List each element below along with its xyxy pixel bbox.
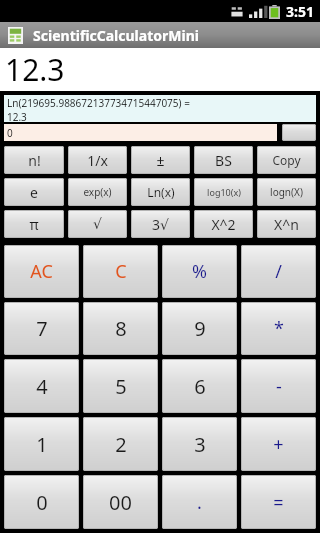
button[interactable]: π	[4, 210, 64, 238]
staticText: 4	[36, 373, 48, 400]
button[interactable]: 4	[4, 359, 79, 413]
button[interactable]: Enter	[282, 124, 316, 141]
button[interactable]: 0	[4, 475, 79, 529]
staticText: ScientificCalculatorMini	[33, 26, 199, 45]
staticText: 8	[115, 315, 127, 342]
staticText: 1	[36, 431, 48, 458]
staticText: C	[115, 259, 127, 284]
button[interactable]: %	[162, 245, 237, 298]
button[interactable]: 2	[83, 417, 158, 471]
staticText: 3√	[152, 215, 169, 234]
button[interactable]: log10(x)	[194, 178, 253, 206]
staticText: 7	[36, 315, 48, 342]
staticText: %	[192, 259, 207, 284]
button[interactable]: Ln(219695.988672137734715447075) =	[4, 95, 316, 122]
button[interactable]: *	[241, 302, 316, 355]
staticText: X^2	[211, 215, 236, 234]
button[interactable]: =	[241, 475, 316, 529]
button[interactable]: C	[83, 245, 158, 298]
staticText: logn(X)	[270, 185, 303, 199]
staticText: 0	[36, 489, 48, 516]
staticText: 3:51	[286, 2, 314, 21]
button[interactable]: 6	[162, 359, 237, 413]
staticText: 2	[115, 431, 127, 458]
staticText: 00	[109, 489, 132, 516]
staticText: 9	[194, 315, 206, 342]
button[interactable]: AC	[4, 245, 79, 298]
staticText: X^n	[274, 215, 299, 234]
staticText: exp(x)	[83, 185, 112, 199]
button[interactable]: Copy	[257, 146, 316, 174]
staticText: +	[273, 432, 284, 457]
button[interactable]: 7	[4, 302, 79, 355]
button[interactable]: 0	[4, 124, 277, 141]
staticText: BS	[215, 151, 232, 170]
button[interactable]: exp(x)	[68, 178, 127, 206]
button[interactable]: e	[4, 178, 64, 206]
button[interactable]: BS	[194, 146, 253, 174]
button[interactable]: logn(X)	[257, 178, 316, 206]
staticText: *	[274, 316, 284, 341]
button[interactable]: √	[68, 210, 127, 238]
button[interactable]: Ln(x)	[131, 178, 190, 206]
staticText: 0	[7, 126, 13, 140]
staticText: 5	[115, 373, 127, 400]
button[interactable]: 12.3	[0, 48, 320, 91]
staticText: log10(x)	[207, 186, 241, 198]
button[interactable]: 1	[4, 417, 79, 471]
button[interactable]: X^2	[194, 210, 253, 238]
button[interactable]: -	[241, 359, 316, 413]
staticText: e	[30, 183, 38, 202]
staticText: /	[275, 259, 282, 284]
button[interactable]: 9	[162, 302, 237, 355]
staticText: n!	[28, 151, 41, 170]
staticText: AC	[30, 259, 53, 284]
staticText: Copy	[272, 152, 301, 168]
staticText: ±	[156, 151, 165, 170]
staticText: =	[273, 490, 284, 515]
button[interactable]: n!	[4, 146, 64, 174]
button[interactable]: X^n	[257, 210, 316, 238]
staticText: -	[276, 374, 282, 399]
staticText: Ln(x)	[147, 184, 175, 200]
button[interactable]: .	[162, 475, 237, 529]
button[interactable]: 00	[83, 475, 158, 529]
staticText: π	[29, 215, 39, 234]
button[interactable]: 3√	[131, 210, 190, 238]
staticText: 6	[194, 373, 206, 400]
staticText: 1/x	[87, 151, 108, 170]
button[interactable]: +	[241, 417, 316, 471]
button[interactable]: 1/x	[68, 146, 127, 174]
staticText: 3	[194, 431, 206, 458]
staticText: .	[197, 490, 202, 515]
staticText: √	[93, 216, 102, 232]
button[interactable]: 8	[83, 302, 158, 355]
button[interactable]: ±	[131, 146, 190, 174]
button[interactable]: /	[241, 245, 316, 298]
button[interactable]: 5	[83, 359, 158, 413]
button[interactable]: 3	[162, 417, 237, 471]
staticText: 12.3	[7, 110, 27, 122]
staticText: 12.3	[5, 49, 65, 90]
staticText: Ln(219695.988672137734715447075) =	[7, 96, 190, 110]
